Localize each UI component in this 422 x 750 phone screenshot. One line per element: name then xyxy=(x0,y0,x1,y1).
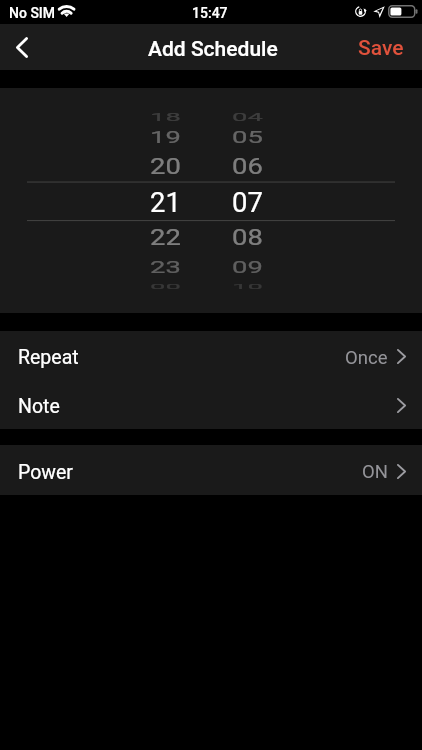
button[interactable]: Power xyxy=(0,445,422,495)
button[interactable]: Note xyxy=(0,380,422,429)
staticText: 21 xyxy=(150,187,181,219)
staticText: No SIM xyxy=(9,5,56,21)
staticText: Once xyxy=(345,347,388,369)
staticText: 04 xyxy=(232,112,263,124)
staticText: 18 xyxy=(150,112,181,124)
staticText: Power xyxy=(18,461,73,484)
staticText: Save xyxy=(358,36,404,61)
staticText: Repeat xyxy=(18,346,79,369)
staticText: 00 xyxy=(150,281,181,291)
button[interactable]: Repeat xyxy=(0,331,422,380)
staticText: ON xyxy=(362,461,388,483)
staticText: 07 xyxy=(232,187,263,219)
staticText: 15:47 xyxy=(192,5,228,21)
button[interactable]: Save xyxy=(358,24,404,70)
button[interactable]: Hour xyxy=(116,88,210,313)
button[interactable]: Minute xyxy=(210,88,304,313)
staticText: 22 xyxy=(150,225,181,250)
staticText: 23 xyxy=(150,258,181,278)
staticText: Add Schedule xyxy=(148,37,278,62)
staticText: 09 xyxy=(232,258,263,278)
staticText: Note xyxy=(18,395,60,418)
staticText: 08 xyxy=(232,225,263,250)
staticText: 19 xyxy=(150,129,181,147)
staticText: 05 xyxy=(232,129,263,147)
button[interactable]: Back xyxy=(0,24,44,70)
staticText: 10 xyxy=(232,281,263,291)
staticText: 06 xyxy=(232,154,263,179)
staticText: 20 xyxy=(150,154,181,179)
